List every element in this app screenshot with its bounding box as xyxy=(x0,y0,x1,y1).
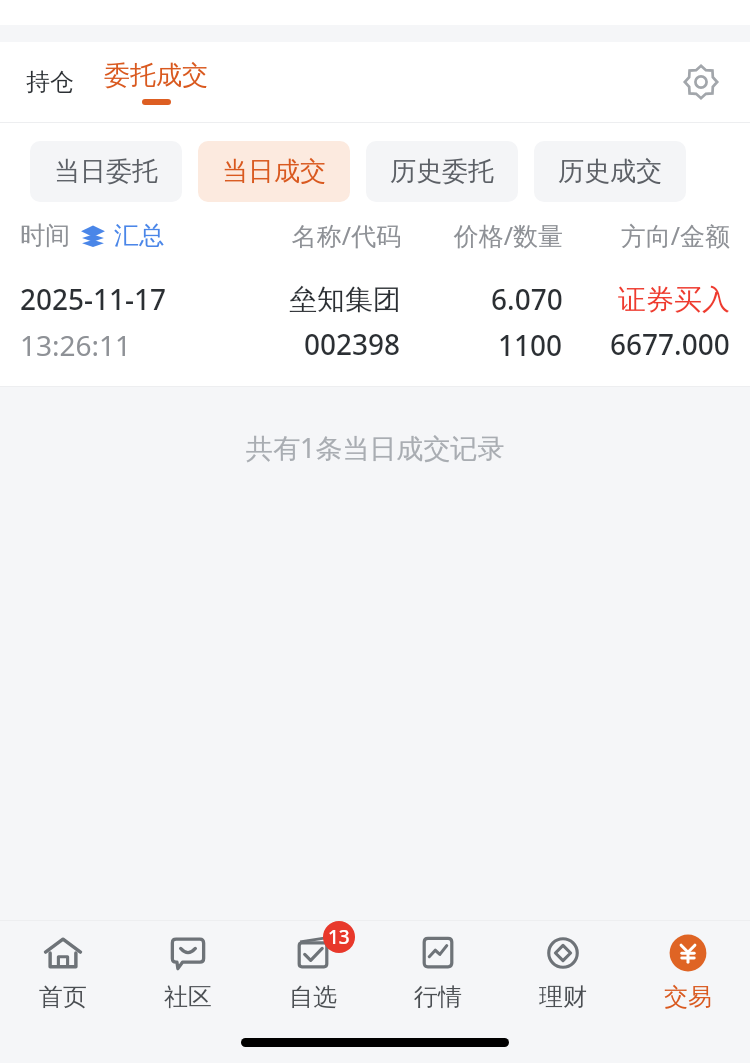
staticText: 时间 xyxy=(20,220,70,251)
staticText: 理财 xyxy=(539,982,587,1012)
staticText: 共有1条当日成交记录 xyxy=(246,429,505,466)
staticText: 名称/代码 xyxy=(234,218,401,252)
button[interactable]: 社区 xyxy=(125,921,250,1021)
button[interactable]: 历史成交 xyxy=(534,141,686,202)
staticText: 持仓 xyxy=(26,67,74,97)
staticText: 交易 xyxy=(664,982,712,1012)
staticText: 002398 xyxy=(304,325,401,363)
button[interactable]: 时间 xyxy=(20,220,234,251)
button[interactable]: 当日成交 xyxy=(198,141,350,202)
staticText: 垒知集团 xyxy=(289,282,401,317)
button[interactable]: 13 xyxy=(250,921,375,1021)
staticText: 证券买入 xyxy=(618,282,730,317)
staticText: 2025-11-17 xyxy=(20,280,167,318)
button[interactable]: Settings xyxy=(674,55,728,109)
staticText: 13 xyxy=(328,924,350,950)
staticText: 6.070 xyxy=(491,280,563,318)
button[interactable]: 理财 xyxy=(500,921,625,1021)
staticText: 历史委托 xyxy=(390,155,494,188)
staticText: 历史成交 xyxy=(558,155,662,188)
staticText: 6677.000 xyxy=(610,325,730,363)
button[interactable]: 委托成交 xyxy=(104,59,208,105)
staticText: 社区 xyxy=(164,982,212,1012)
staticText: 自选 xyxy=(289,982,337,1012)
button[interactable]: 行情 xyxy=(375,921,500,1021)
button[interactable]: 首页 xyxy=(0,921,125,1021)
button[interactable]: 当日委托 xyxy=(30,141,182,202)
staticText: 行情 xyxy=(414,982,462,1012)
staticText: 价格/数量 xyxy=(401,218,563,252)
button[interactable]: 历史委托 xyxy=(366,141,518,202)
staticText: 委托成交 xyxy=(104,59,208,92)
staticText: 首页 xyxy=(39,982,87,1012)
staticText: 汇总 xyxy=(114,220,164,251)
staticText: 1100 xyxy=(498,326,563,364)
button[interactable]: 交易 xyxy=(625,921,750,1021)
staticText: 13:26:11 xyxy=(20,326,132,364)
staticText: 当日成交 xyxy=(222,155,326,188)
staticText: 方向/金额 xyxy=(563,218,730,252)
button[interactable]: 2025-11-17 xyxy=(0,258,750,386)
staticText: 当日委托 xyxy=(54,155,158,188)
button[interactable]: 持仓 xyxy=(22,67,78,97)
